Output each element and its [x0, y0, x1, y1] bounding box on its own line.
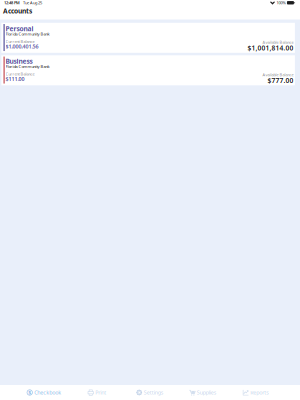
- staticText: 100%: [276, 0, 285, 5]
- staticText: Business: [6, 57, 33, 65]
- staticText: Current Balance: [6, 39, 35, 44]
- staticText: Florida Community Bank: [6, 31, 50, 37]
- staticText: $111.00: [6, 75, 25, 83]
- staticText: Supplies: [197, 389, 217, 396]
- button[interactable]: Settings: [123, 385, 176, 400]
- staticText: Settings: [144, 389, 164, 396]
- staticText: 12:48 PM: [4, 0, 20, 5]
- staticText: Current Balance: [6, 71, 35, 77]
- staticText: $: [28, 389, 31, 396]
- button[interactable]: Personal: [0, 23, 300, 53]
- staticText: $1,001,814.00: [247, 43, 293, 52]
- button[interactable]: $: [17, 385, 70, 400]
- staticText: Tue Aug 25: [23, 0, 42, 5]
- staticText: $777.00: [267, 76, 293, 85]
- staticText: Florida Community Bank: [6, 64, 50, 69]
- staticText: Available Balance: [262, 40, 293, 45]
- button[interactable]: Print: [70, 385, 123, 400]
- staticText: Accounts: [3, 6, 32, 15]
- button[interactable]: Supplies: [176, 385, 229, 400]
- staticText: Print: [95, 389, 106, 396]
- button[interactable]: Reports: [229, 385, 282, 400]
- staticText: Checkbook: [34, 389, 61, 396]
- staticText: Reports: [250, 389, 269, 396]
- staticText: Personal: [6, 24, 34, 33]
- button[interactable]: Business: [0, 55, 300, 85]
- staticText: Available Balance: [262, 72, 293, 77]
- staticText: $1,000,401.56: [6, 43, 39, 50]
